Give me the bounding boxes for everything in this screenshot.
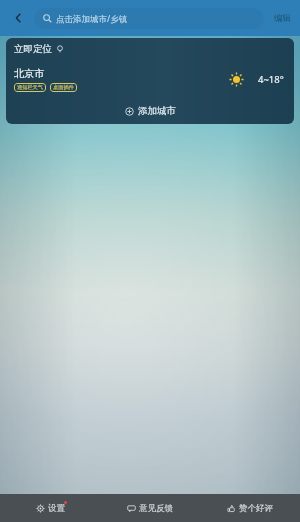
button[interactable]: 添加城市 bbox=[6, 98, 294, 124]
staticText: 意见反馈 bbox=[139, 503, 173, 514]
button[interactable]: 意见反馈 bbox=[100, 494, 200, 522]
button[interactable]: 立即定位 bbox=[6, 38, 294, 60]
button[interactable]: 编辑 bbox=[271, 9, 294, 28]
staticText: 设置 bbox=[48, 503, 65, 514]
staticText: 点击添加城市/乡镇 bbox=[56, 13, 128, 25]
staticText: 立即定位 bbox=[14, 43, 52, 55]
staticText: 赞个好评 bbox=[239, 503, 273, 514]
staticText: 通知栏天气 bbox=[17, 84, 43, 91]
staticText: 北京市 bbox=[14, 67, 44, 80]
button[interactable]: 北京市 bbox=[6, 60, 294, 98]
staticText: 添加城市 bbox=[138, 105, 176, 117]
staticText: 4~18° bbox=[258, 73, 284, 86]
button[interactable]: 赞个好评 bbox=[200, 494, 300, 522]
button[interactable]: 设置 bbox=[0, 494, 100, 522]
staticText: 桌面插件 bbox=[53, 84, 74, 91]
button[interactable]: 桌面插件 bbox=[50, 83, 77, 92]
button[interactable]: 通知栏天气 bbox=[14, 83, 46, 92]
button[interactable]: 点击添加城市/乡镇 bbox=[34, 8, 264, 29]
staticText: 编辑 bbox=[274, 13, 291, 24]
button[interactable]: Back bbox=[6, 5, 32, 31]
